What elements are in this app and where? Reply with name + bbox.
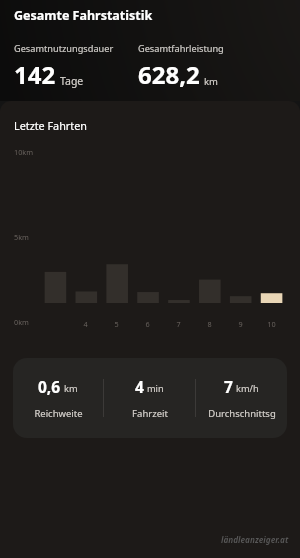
staticText: 5km (14, 232, 29, 242)
staticText: Fahrzeit (132, 407, 168, 420)
staticText: 628,2 (138, 58, 200, 91)
staticText: Tage (60, 74, 84, 88)
button[interactable]: Letzte Fahrten Balkendiagramm (0, 141, 300, 331)
staticText: 10 (267, 319, 276, 329)
staticText: Gesamtfahrleistung (138, 42, 224, 55)
staticText: Letzte Fahrten (14, 118, 87, 133)
staticText: 0,6 (38, 376, 61, 397)
staticText: 7 (176, 319, 181, 329)
staticText: 10km (14, 147, 34, 157)
staticText: 8 (207, 319, 212, 329)
staticText: Durchschnittsg (208, 407, 276, 420)
staticText: 5 (114, 319, 119, 329)
staticText: 6 (145, 319, 150, 329)
staticText: 0km (14, 317, 29, 327)
staticText: Reichweite (34, 407, 83, 420)
staticText: km (204, 75, 218, 88)
staticText: 9 (238, 319, 243, 329)
button[interactable]: 0,6 (13, 358, 287, 438)
button[interactable]: Gesamte Fahrstatistik (0, 0, 300, 101)
staticText: km/h (236, 382, 259, 395)
staticText: Gesamte Fahrstatistik (14, 7, 153, 24)
staticText: min (147, 382, 164, 395)
staticText: 142 (14, 58, 56, 91)
staticText: km (64, 382, 78, 395)
staticText: ländleanzeiger.at (221, 534, 289, 545)
staticText: 4 (135, 376, 144, 397)
staticText: 4 (83, 319, 88, 329)
staticText: Gesamtnutzungsdauer (14, 42, 114, 55)
staticText: 7 (224, 376, 233, 397)
